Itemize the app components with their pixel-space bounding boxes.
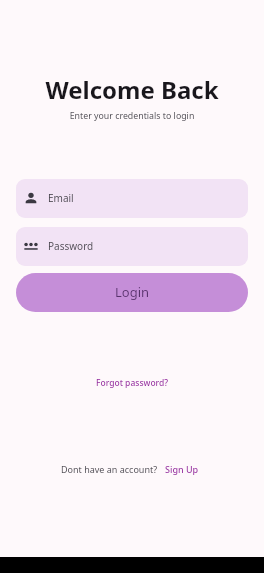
staticText: Password <box>48 239 94 253</box>
staticText: Login <box>115 283 150 301</box>
staticText: Email <box>48 191 74 205</box>
button[interactable]: Login <box>16 273 248 312</box>
button[interactable]: Forgot password? <box>88 371 177 395</box>
staticText: Enter your credentials to login <box>0 110 264 122</box>
button[interactable]: Sign Up <box>161 458 203 480</box>
button[interactable]: Password <box>16 227 248 266</box>
other: Account <box>23 190 39 206</box>
staticText: Welcome Back <box>0 73 264 106</box>
staticText: Dont have an account? <box>61 463 158 475</box>
staticText: Sign Up <box>165 463 199 475</box>
button[interactable]: Account <box>16 179 248 218</box>
other: Password <box>23 238 39 254</box>
staticText: Forgot password? <box>96 377 169 389</box>
